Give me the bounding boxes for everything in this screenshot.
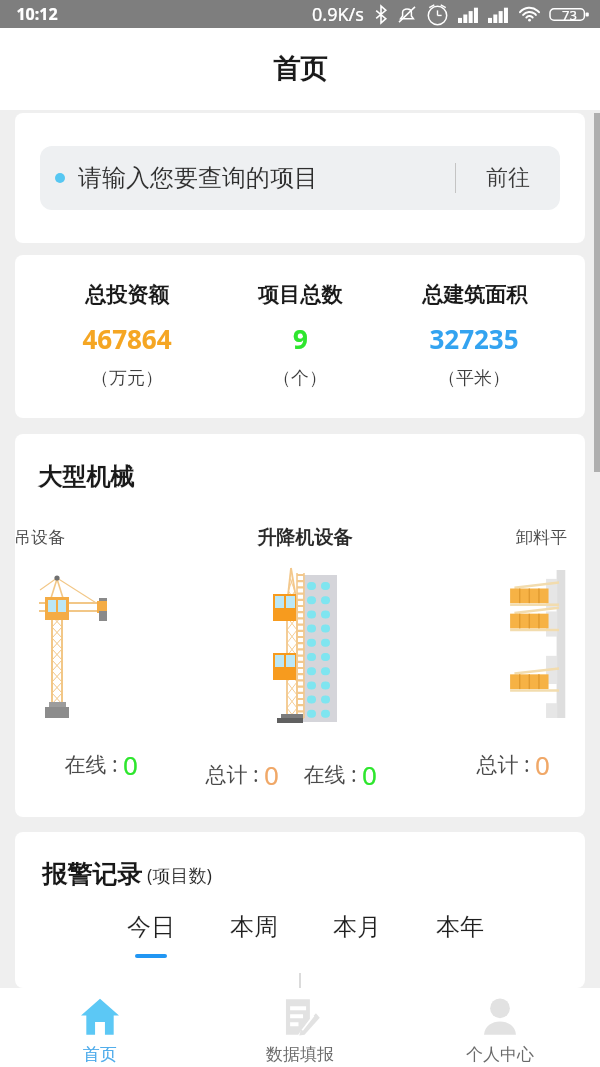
staticText: 首页 (273, 52, 327, 86)
staticText: 总投资额 (85, 282, 169, 308)
staticText: 本年 (436, 912, 484, 942)
staticText: (项目数) (147, 863, 212, 888)
button[interactable]: 前往 (456, 146, 560, 210)
staticText: 0 (264, 757, 279, 792)
staticText: 请输入您要查询的项目 (78, 163, 318, 193)
button[interactable]: 首页 (0, 988, 200, 1067)
staticText: 项目总数 (258, 282, 342, 308)
button[interactable]: 本周 (230, 912, 278, 958)
staticText: 本月 (333, 912, 381, 942)
staticText: （万元） (91, 367, 163, 390)
button[interactable]: 数据填报 (200, 988, 400, 1067)
staticText: 报警记录 (42, 859, 142, 890)
staticText: 总计 : (205, 760, 259, 789)
staticText: 0 (123, 747, 138, 782)
button[interactable]: 本年 (436, 912, 484, 958)
staticText: 升降机设备 (257, 526, 352, 550)
staticText: 本周 (230, 912, 278, 942)
staticText: 个人中心 (466, 1044, 534, 1065)
staticText: 0 (535, 747, 550, 782)
staticText: 塔吊设备 (15, 527, 65, 548)
button[interactable]: 塔吊设备 在线 0 (15, 514, 185, 794)
staticText: 今日 (127, 912, 175, 942)
button[interactable]: 卸料平台 总计 0 (430, 514, 585, 794)
staticText: （个） (273, 367, 327, 390)
button[interactable]: 今日 (127, 912, 175, 958)
staticText: 467864 (82, 321, 172, 356)
staticText: 9 (293, 321, 308, 356)
staticText: 10:12 (16, 3, 58, 25)
staticText: （平米） (438, 367, 510, 390)
button[interactable]: 升降机设备 总计 0 在线 0 (190, 514, 420, 794)
staticText: 在线 : (303, 760, 357, 789)
staticText: 0 (362, 757, 377, 792)
staticText: 0.9K/s (312, 2, 364, 27)
staticText: 首页 (83, 1044, 117, 1065)
staticText: 大型机械 (38, 462, 134, 492)
staticText: 总建筑面积 (422, 282, 527, 308)
staticText: 在线 : (64, 750, 118, 779)
staticText: 327235 (429, 321, 519, 356)
staticText: 卸料平 (516, 527, 567, 548)
staticText: 总计 : (476, 750, 530, 779)
staticText: 73 (562, 6, 577, 24)
staticText: 数据填报 (266, 1044, 334, 1065)
button[interactable]: 请输入您要查询的项目 (40, 146, 560, 210)
button[interactable]: 个人中心 (400, 988, 600, 1067)
staticText: 前往 (486, 164, 530, 192)
button[interactable]: 本月 (333, 912, 381, 958)
